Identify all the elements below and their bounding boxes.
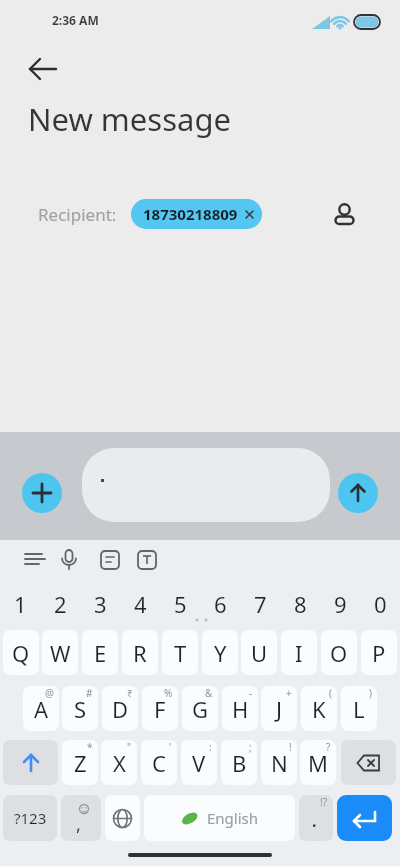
staticText: 3 <box>94 589 107 619</box>
staticText: : <box>209 740 212 754</box>
button[interactable]: Q <box>3 630 39 675</box>
button[interactable]: M <box>300 740 336 785</box>
button[interactable]: 5 <box>160 584 200 624</box>
staticText: N <box>271 748 288 778</box>
button[interactable]: 1 <box>0 584 40 624</box>
button[interactable]: 0 <box>360 584 400 624</box>
staticText: ?123 <box>14 808 47 828</box>
button[interactable]: Z <box>62 740 98 785</box>
button[interactable]: X <box>101 740 137 785</box>
staticText: English <box>207 808 259 828</box>
button[interactable]: B <box>221 740 257 785</box>
button[interactable]: 6 <box>200 584 240 624</box>
button[interactable] <box>20 50 66 88</box>
button[interactable]: O <box>321 630 357 675</box>
staticText: New message <box>28 98 231 140</box>
button[interactable]: N <box>261 740 297 785</box>
staticText: T <box>174 638 187 668</box>
button[interactable]: 18730218809 <box>131 199 262 229</box>
staticText: Recipient: <box>38 203 117 226</box>
staticText: ) <box>369 686 372 700</box>
staticText: ! <box>289 740 292 754</box>
button[interactable]: A <box>23 686 59 731</box>
staticText: % <box>164 686 173 700</box>
button[interactable]: J <box>261 686 297 731</box>
button[interactable]: ?123 <box>3 795 57 841</box>
button[interactable]: W <box>42 630 78 675</box>
button[interactable]: I <box>281 630 317 675</box>
staticText: !? <box>320 795 328 809</box>
staticText: B <box>232 748 247 778</box>
staticText: D <box>112 694 129 724</box>
staticText: Y <box>214 638 227 668</box>
button[interactable]: U <box>241 630 277 675</box>
staticText: 0 <box>374 589 387 619</box>
button[interactable]: R <box>122 630 158 675</box>
staticText: 18730218809 <box>143 204 238 224</box>
staticText: , <box>76 812 81 837</box>
staticText: H <box>232 694 249 724</box>
staticText: ; <box>249 740 252 754</box>
button[interactable] <box>133 542 161 576</box>
button[interactable]: 7 <box>240 584 280 624</box>
button[interactable]: F <box>142 686 178 731</box>
staticText: 7 <box>254 589 267 619</box>
staticText: - <box>249 686 253 700</box>
button[interactable]: 9 <box>320 584 360 624</box>
staticText: G <box>192 694 209 724</box>
staticText: V <box>192 748 206 778</box>
staticText: Q <box>12 638 30 668</box>
button[interactable]: 8 <box>280 584 320 624</box>
button[interactable] <box>96 542 124 576</box>
button[interactable] <box>55 542 83 576</box>
button[interactable]: S <box>62 686 98 731</box>
button[interactable]: G <box>182 686 218 731</box>
button[interactable]: T <box>162 630 198 675</box>
button[interactable] <box>82 448 330 522</box>
button[interactable]: C <box>141 740 177 785</box>
button[interactable]: K <box>301 686 337 731</box>
button[interactable]: 2 <box>40 584 80 624</box>
staticText: K <box>312 694 326 724</box>
staticText: 1 <box>14 589 27 619</box>
staticText: 8 <box>294 589 307 619</box>
staticText: * <box>87 740 93 754</box>
button[interactable]: E <box>82 630 118 675</box>
button[interactable]: English <box>144 795 295 841</box>
staticText: J <box>276 694 283 724</box>
staticText: 6 <box>214 589 227 619</box>
button[interactable]: H <box>222 686 258 731</box>
staticText: F <box>154 694 166 724</box>
staticText: ? <box>326 740 331 754</box>
staticText: Z <box>74 748 87 778</box>
button[interactable] <box>338 473 378 513</box>
staticText: # <box>86 686 93 700</box>
staticText: ' <box>169 740 172 754</box>
staticText: I <box>295 638 303 668</box>
staticText: 4 <box>134 589 147 619</box>
button[interactable]: D <box>102 686 138 731</box>
staticText: M <box>308 748 328 778</box>
button[interactable] <box>341 740 396 785</box>
button[interactable]: 3 <box>80 584 120 624</box>
staticText: L <box>353 694 365 724</box>
button[interactable]: P <box>361 630 397 675</box>
staticText: & <box>205 686 213 700</box>
button[interactable]: V <box>181 740 217 785</box>
button[interactable]: !? <box>299 795 333 841</box>
button[interactable]: L <box>341 686 377 731</box>
button[interactable] <box>3 740 58 785</box>
button[interactable]: Y <box>202 630 238 675</box>
button[interactable] <box>330 199 360 229</box>
button[interactable]: , <box>61 795 101 841</box>
button[interactable] <box>16 542 46 576</box>
button[interactable] <box>22 473 62 513</box>
button[interactable] <box>337 795 392 841</box>
button[interactable]: 4 <box>120 584 160 624</box>
staticText: S <box>74 694 87 724</box>
staticText: ( <box>329 686 332 700</box>
staticText: @ <box>45 686 54 700</box>
staticText: R <box>133 638 147 668</box>
staticText: U <box>251 638 268 668</box>
button[interactable] <box>105 795 140 841</box>
